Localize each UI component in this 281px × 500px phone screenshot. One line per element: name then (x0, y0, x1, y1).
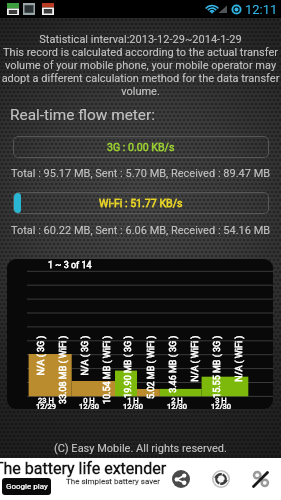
button[interactable]: Refresh (201, 458, 241, 500)
staticText: 3G : 0.00 KB/s (107, 141, 175, 153)
button[interactable]: 1 ~ 3 of 14 (7, 259, 273, 409)
staticText: Total : 60.22 MB, Sent : 6.06 MB, Receiv… (0, 224, 281, 237)
staticText: N/A ( WiFi ) (233, 335, 244, 409)
button[interactable]: The battery life extender (0, 458, 161, 500)
staticText: 1 ~ 3 of 14 (48, 260, 92, 271)
staticText: Real-time flow meter: (10, 106, 155, 124)
staticText: 0 H 12/30 (69, 396, 109, 409)
staticText: 5.02 MB ( WiFi ) (145, 335, 156, 409)
staticText: 3.46 MB ( 3G ) (167, 335, 178, 409)
staticText: N/A ( 3G ) (35, 335, 46, 409)
staticText: The battery life extender (0, 459, 169, 478)
button[interactable]: Share (161, 458, 201, 500)
staticText: Statistical interval:2013-12-29~2014-1-2… (0, 33, 281, 46)
staticText: 19.90 MB ( 3G ) (122, 335, 133, 409)
button[interactable]: Settings (241, 458, 281, 500)
staticText: 1 H 12/30 (113, 396, 153, 409)
staticText: 15.55 MB ( 3G ) (211, 335, 222, 409)
staticText: 10.54 MB ( WiFi ) (101, 335, 112, 409)
button[interactable]: 3G : 0.00 KB/s (13, 136, 269, 158)
staticText: N/A ( 3G ) (79, 335, 90, 409)
staticText: The simplest battery saver (66, 477, 160, 486)
staticText: 2 H 12/30 (157, 396, 197, 409)
staticText: N/A ( WiFi ) (189, 335, 200, 409)
staticText: 23 H 12/29 (26, 396, 66, 409)
staticText: This record is calculated according to t… (0, 46, 281, 98)
staticText: Total : 95.17 MB, Sent : 5.70 MB, Receiv… (0, 167, 281, 180)
button[interactable]: Wi-Fi : 51.77 KB/s (13, 192, 269, 214)
staticText: 12:11 (245, 2, 278, 17)
staticText: Google play (6, 482, 48, 491)
staticText: 3 H 12/30 (201, 396, 241, 409)
staticText: Wi-Fi : 51.77 KB/s (99, 197, 183, 209)
staticText: 33.08 MB ( WiFi ) (57, 335, 68, 409)
staticText: (C) Easy Mobile. All rights reserved. (0, 442, 281, 455)
